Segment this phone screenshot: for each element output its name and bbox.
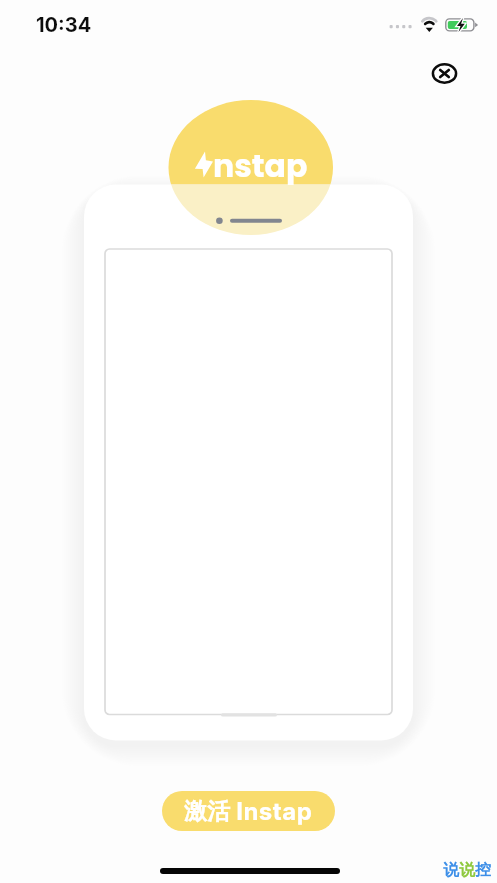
- staticText: 说: [443, 860, 459, 880]
- button[interactable]: Close: [426, 57, 463, 90]
- staticText: 10:34: [36, 13, 92, 37]
- staticText: nstap: [213, 144, 308, 188]
- staticText: 说: [459, 860, 475, 880]
- staticText: 激活: [184, 797, 230, 826]
- staticText: 控: [475, 860, 491, 880]
- button[interactable]: 激活: [162, 791, 335, 831]
- staticText: Instap: [230, 797, 313, 826]
